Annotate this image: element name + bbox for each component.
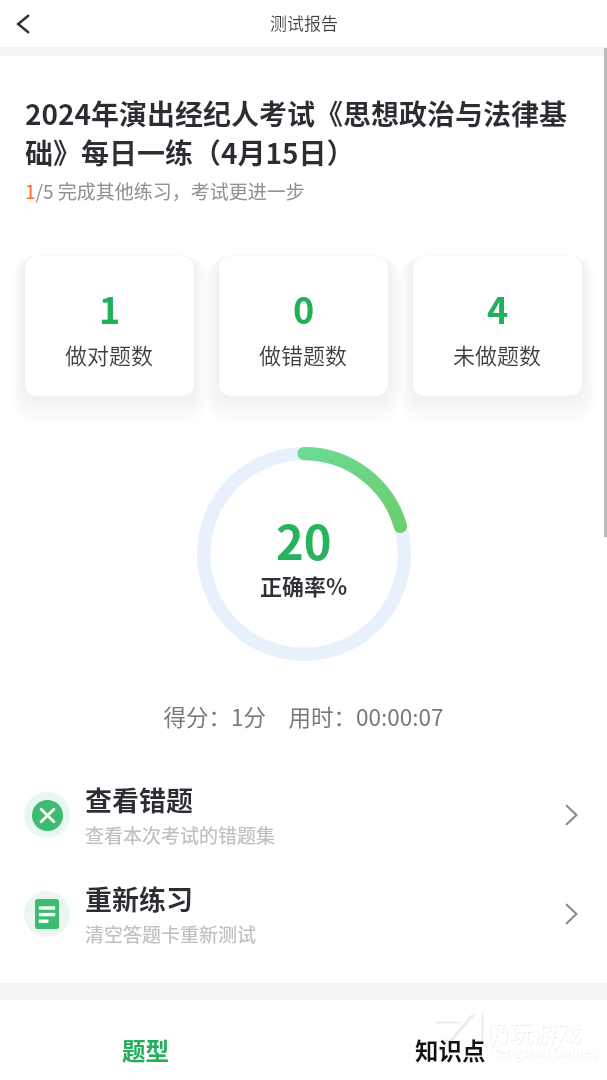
staticText: 查看本次考试的错题集 xyxy=(85,821,276,849)
staticText: 重新练习 xyxy=(85,879,193,918)
staticText: 1 xyxy=(99,282,121,334)
staticText: 题型 xyxy=(122,1033,169,1067)
staticText: 2024年演出经纪人考试《思想政治与法律基础》每日一练（4月15日） xyxy=(25,93,584,172)
staticText: Rengwan Games xyxy=(490,1042,599,1062)
staticText: 仍玩游戏 xyxy=(486,1015,582,1050)
button[interactable]: 1 xyxy=(25,256,194,396)
staticText: 清空答题卡重新测试 xyxy=(85,920,257,948)
staticText: 0 xyxy=(293,282,315,334)
staticText: 4 xyxy=(487,282,509,334)
staticText: 测试报告 xyxy=(270,10,338,35)
staticText: 做对题数 xyxy=(65,338,154,370)
staticText: 20 xyxy=(276,505,332,573)
staticText: 做错题数 xyxy=(259,338,348,370)
staticText: 仍玩游戏 xyxy=(485,1014,581,1049)
button[interactable]: 题型 xyxy=(0,1000,303,1080)
staticText: 知识点 xyxy=(415,1033,486,1067)
staticText: Rengwan Games xyxy=(489,1041,598,1061)
staticText: 得分：1分 用时：00:00:07 xyxy=(0,700,607,733)
button[interactable]: 0 xyxy=(219,256,388,396)
staticText: 1/5 完成其他练习，考试更进一步 xyxy=(25,177,305,205)
button[interactable]: 4 xyxy=(413,256,582,396)
button[interactable]: 重新练习 xyxy=(0,879,607,948)
button[interactable]: 知识点 xyxy=(303,1000,607,1080)
button[interactable]: Back xyxy=(0,0,47,47)
staticText: 查看错题 xyxy=(85,780,193,819)
button[interactable]: 查看错题 xyxy=(0,780,607,849)
staticText: 正确率% xyxy=(260,569,348,601)
staticText: 未做题数 xyxy=(453,338,542,370)
